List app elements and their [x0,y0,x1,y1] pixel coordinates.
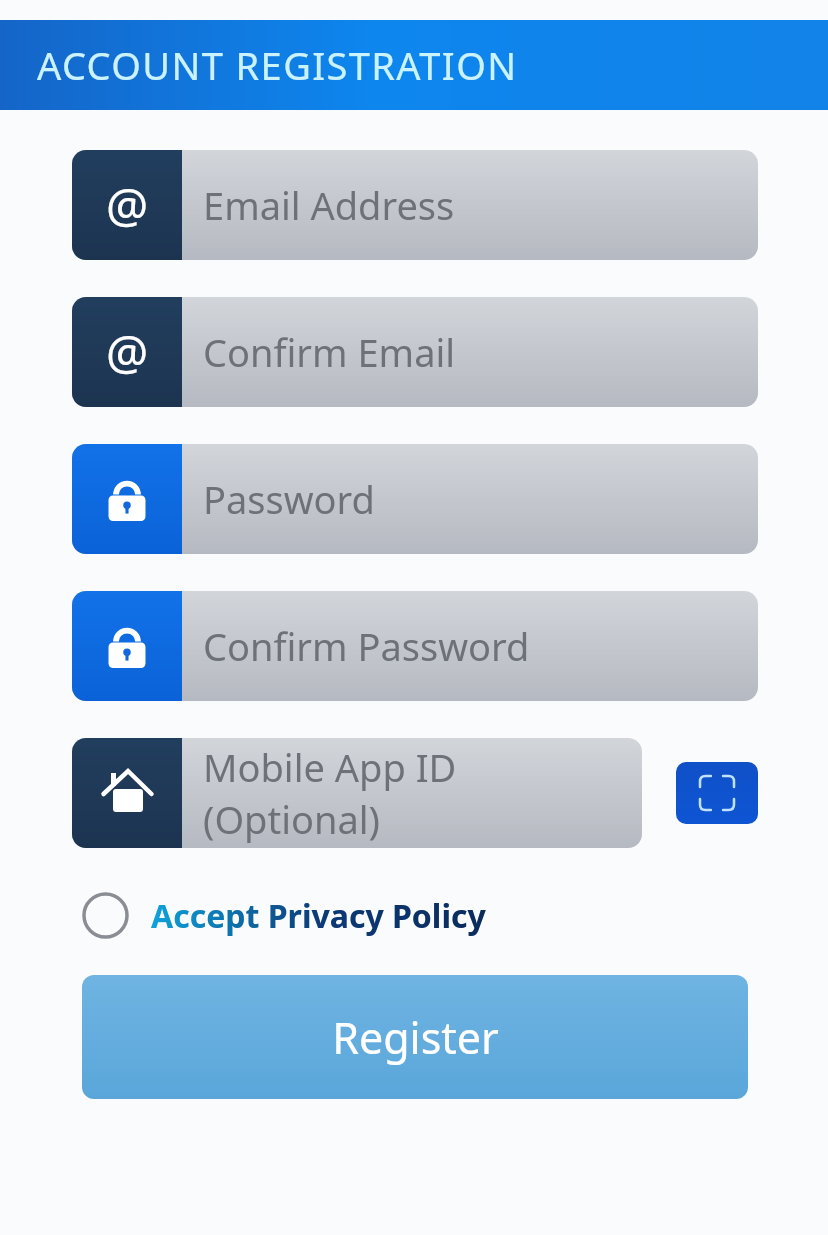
button[interactable]: Mobile App ID (Optional) [72,738,642,848]
button[interactable]: ACCOUNT REGISTRATION [0,20,828,110]
staticText: Password [203,473,375,525]
staticText: Confirm Password [203,620,530,672]
staticText: Confirm Email [203,326,456,378]
staticText: @ [106,173,149,237]
staticText: ACCOUNT REGISTRATION [37,39,518,91]
button[interactable]: @ [72,150,758,260]
staticText: Register [332,1008,499,1067]
button[interactable]: Scan QR code [676,762,758,824]
button[interactable]: Password [72,444,758,554]
staticText: @ [106,320,149,384]
button[interactable]: Confirm Password [72,591,758,701]
staticText: Email Address [203,179,455,231]
staticText: Accept Privacy Policy [151,894,486,938]
button[interactable]: @ [72,297,758,407]
staticText: Mobile App ID (Optional) [203,741,642,845]
button[interactable]: Register [82,975,748,1099]
button[interactable]: Accept Privacy Policy [82,892,486,939]
